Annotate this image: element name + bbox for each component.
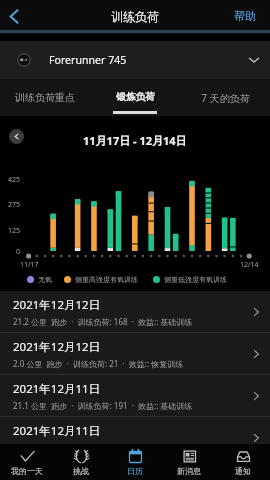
staticText: 新消息 — [177, 466, 201, 476]
button[interactable]: 2021年12月12日 — [0, 333, 270, 374]
staticText: 7 天的负荷 — [201, 91, 250, 105]
button[interactable]: Challenges — [54, 444, 108, 480]
button[interactable]: Previous week — [9, 129, 24, 144]
staticText: 训练负荷 — [111, 9, 159, 24]
button[interactable]: 2021年12月11日 — [0, 417, 270, 458]
button[interactable]: 训练负荷重点 — [0, 79, 90, 116]
staticText: 挑战 — [73, 466, 89, 476]
staticText: 12/14 — [240, 260, 259, 270]
staticText: 锻炼负荷 — [116, 91, 155, 103]
staticText: 侧重高强度有氧训练 — [75, 275, 138, 284]
staticText: 21.1 公里 跑步 · 训练负荷: 191 · 效益:: 基础训练 — [13, 400, 193, 411]
staticText: 0 — [16, 247, 21, 257]
staticText: 通知 — [235, 466, 251, 476]
staticText: 125 — [8, 226, 21, 236]
staticText: 2021年12月11日 — [13, 381, 101, 397]
staticText: 425 — [8, 175, 21, 185]
button[interactable]: My Day — [0, 444, 54, 480]
staticText: 2021年12月12日 — [13, 339, 101, 355]
button[interactable]: News — [162, 444, 216, 480]
staticText: 11月17日 - 12月14日 — [83, 133, 187, 148]
staticText: 无氧 — [38, 275, 52, 284]
button[interactable]: 2021年12月11日 — [0, 375, 270, 416]
staticText: 275 — [8, 200, 21, 210]
staticText: 2.0 公里 跑步 · 训练负荷: 21 · 效益:: 恢复训练 — [13, 358, 184, 369]
staticText: 侧重低强度有氧训练 — [164, 275, 227, 284]
staticText: 1.1 公里 跑步 · 训练负荷: 8 · 效益:: 恢复训练 — [13, 442, 179, 453]
staticText: 21.2 公里 跑步 · 训练负荷: 168 · 效益:: 基础训练 — [13, 316, 193, 327]
staticText: 11/17 — [20, 260, 39, 270]
staticText: 2021年12月12日 — [13, 297, 101, 313]
button[interactable]: 2021年12月12日 — [0, 291, 270, 332]
button[interactable]: 锻炼负荷 — [90, 79, 180, 116]
button[interactable]: 帮助 — [234, 9, 256, 23]
button[interactable]: 7 天的负荷 — [180, 79, 270, 116]
staticText: Forerunner 745 — [49, 53, 127, 67]
button[interactable]: Notifications — [216, 444, 270, 480]
staticText: 帮助 — [234, 9, 256, 23]
staticText: 训练负荷重点 — [15, 91, 75, 104]
button[interactable]: Calendar — [108, 444, 162, 480]
staticText: 我的一天 — [11, 466, 43, 476]
staticText: 2021年12月11日 — [13, 423, 101, 439]
button[interactable]: Back — [0, 3, 26, 29]
staticText: 日历 — [127, 466, 143, 476]
button[interactable]: Forerunner 745 — [0, 41, 270, 79]
